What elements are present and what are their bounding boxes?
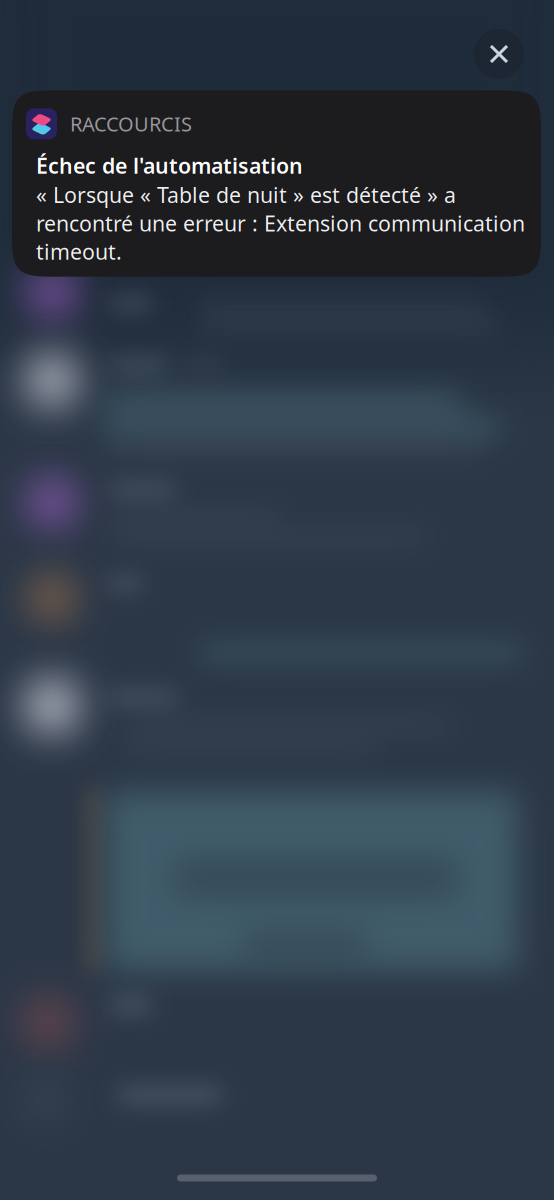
- staticText: « Lorsque « Table de nuit » est détecté …: [36, 181, 525, 266]
- staticText: RACCOURCIS: [70, 111, 192, 137]
- button[interactable]: Close: [472, 27, 526, 81]
- staticText: Échec de l'automatisation: [36, 151, 303, 180]
